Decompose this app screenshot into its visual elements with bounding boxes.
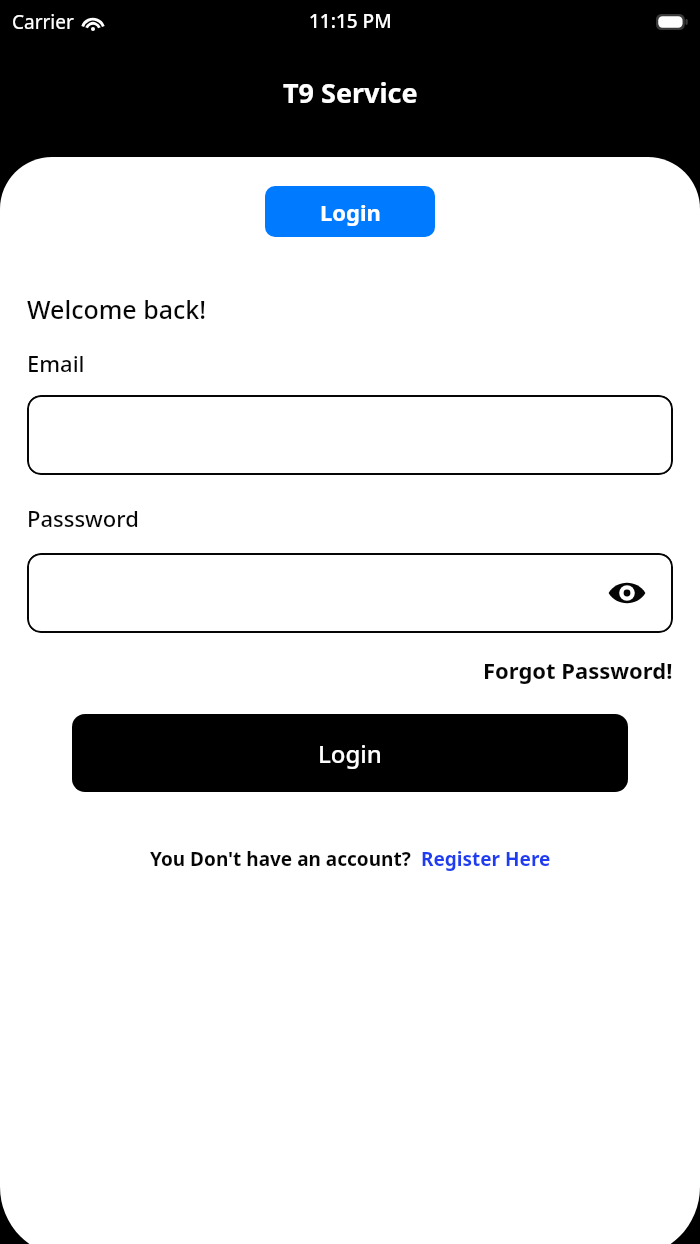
staticText: Login — [318, 737, 382, 770]
button[interactable] — [27, 395, 673, 475]
staticText: Carrier — [12, 9, 74, 35]
staticText: Passsword — [27, 503, 139, 533]
staticText: 11:15 PM — [309, 8, 392, 34]
staticText: T9 Service — [283, 74, 418, 111]
button[interactable]: Show password — [605, 571, 649, 615]
button[interactable]: Register Here — [421, 846, 551, 872]
button[interactable]: Login — [265, 186, 435, 237]
staticText: You Don't have an account? — [150, 846, 411, 872]
staticText: Email — [27, 348, 85, 378]
button[interactable]: Show password — [27, 553, 673, 633]
button[interactable]: Forgot Password! — [483, 655, 673, 685]
staticText: Welcome back! — [27, 292, 207, 326]
staticText: Login — [320, 197, 381, 227]
button[interactable]: Login — [72, 714, 628, 792]
